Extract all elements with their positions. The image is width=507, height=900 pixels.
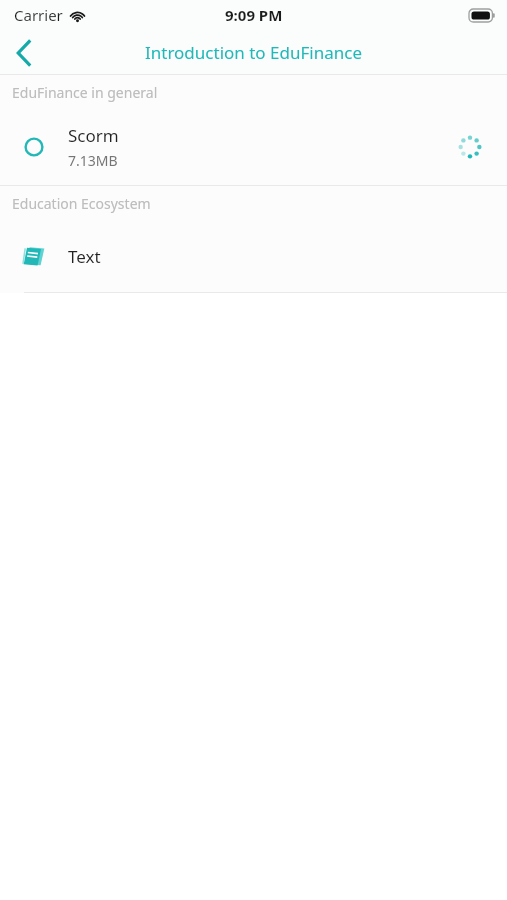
staticText: 7.13MB — [68, 151, 118, 170]
staticText: 9:09 PM — [225, 5, 283, 25]
button[interactable]: Text — [0, 220, 507, 292]
button[interactable]: Back — [0, 30, 48, 75]
staticText: Text — [68, 245, 101, 268]
staticText: Introduction to EduFinance — [145, 41, 362, 64]
staticText: Scorm — [68, 124, 119, 147]
staticText: EduFinance in general — [12, 83, 158, 102]
staticText: Education Ecosystem — [12, 194, 151, 213]
staticText: Carrier — [14, 5, 63, 25]
button[interactable]: Scorm — [0, 109, 507, 185]
